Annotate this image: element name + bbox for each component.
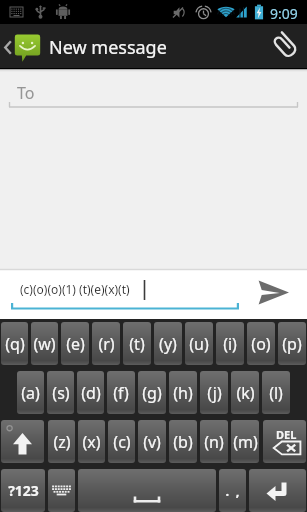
button[interactable]: (u) [185, 322, 213, 365]
staticText: (c) [113, 431, 131, 453]
staticText: (t) [129, 333, 145, 355]
button[interactable]: (d) [77, 371, 104, 414]
staticText: New message [49, 35, 167, 60]
button[interactable]: (b) [169, 420, 197, 463]
button[interactable]: Attach [265, 24, 307, 68]
button[interactable]: (w) [31, 322, 58, 365]
button[interactable]: Send [239, 269, 307, 319]
staticText: (m) [233, 431, 258, 453]
button[interactable]: (r) [92, 322, 120, 365]
button[interactable]: (o) [247, 322, 275, 365]
button[interactable]: (m) [231, 420, 259, 463]
staticText: (b) [173, 431, 193, 453]
button[interactable]: Switch input method [48, 469, 75, 512]
staticText: 9:09 [270, 4, 298, 23]
button[interactable]: (h) [169, 371, 197, 414]
button[interactable]: Shift [1, 420, 44, 463]
button[interactable]: (g) [138, 371, 166, 414]
button[interactable]: (f) [107, 371, 135, 414]
button[interactable]: Up [0, 24, 167, 68]
staticText: (s) [52, 382, 70, 404]
button[interactable]: (n) [200, 420, 228, 463]
button[interactable]: (j) [200, 371, 228, 414]
staticText: (q) [5, 333, 25, 355]
button[interactable]: (y) [154, 322, 182, 365]
staticText: (w) [33, 333, 56, 355]
staticText: (a) [21, 382, 40, 404]
button[interactable]: (a) [17, 371, 44, 414]
staticText: To [17, 82, 35, 104]
staticText: (i) [223, 333, 237, 355]
staticText: (g) [142, 382, 162, 404]
staticText: (k) [236, 382, 255, 404]
button[interactable]: (c) [108, 420, 135, 463]
staticText: (o) [251, 333, 271, 355]
staticText: (c)(o)(o)(1) (t)(e)(x)(t) [20, 281, 130, 297]
staticText: (p) [282, 333, 302, 355]
button[interactable]: ?123 [1, 469, 45, 512]
button[interactable]: Delete [263, 420, 306, 463]
button[interactable]: Enter [249, 469, 306, 512]
button[interactable]: (v) [138, 420, 166, 463]
button[interactable]: (i) [216, 322, 244, 365]
button[interactable]: (p) [278, 322, 306, 365]
staticText: (f) [113, 382, 129, 404]
staticText: (d) [81, 382, 101, 404]
staticText: (v) [143, 431, 161, 453]
staticText: ?123 [8, 481, 39, 500]
staticText: (x) [82, 431, 101, 453]
staticText: (e) [66, 333, 85, 355]
staticText: . , [225, 482, 240, 500]
button[interactable]: (k) [231, 371, 259, 414]
button[interactable]: (x) [78, 420, 105, 463]
button[interactable]: (c)(o)(o)(1) (t)(e)(x)(t) [11, 269, 239, 319]
staticText: (j) [207, 382, 222, 404]
staticText: (l) [269, 382, 283, 404]
staticText: (u) [189, 333, 209, 355]
button[interactable]: (z) [48, 420, 75, 463]
button[interactable]: (e) [61, 322, 89, 365]
button[interactable]: (t) [123, 322, 151, 365]
button[interactable]: (q) [1, 322, 28, 365]
button[interactable]: (s) [47, 371, 74, 414]
button[interactable]: Space [78, 469, 216, 512]
staticText: (z) [53, 431, 71, 453]
button[interactable]: To [0, 72, 307, 111]
staticText: (y) [159, 333, 177, 355]
staticText: (r) [98, 333, 115, 355]
staticText: DEL [276, 427, 297, 442]
button[interactable]: . , [219, 469, 246, 512]
staticText: (n) [204, 431, 224, 453]
button[interactable]: (l) [262, 371, 290, 414]
staticText: (h) [173, 382, 193, 404]
